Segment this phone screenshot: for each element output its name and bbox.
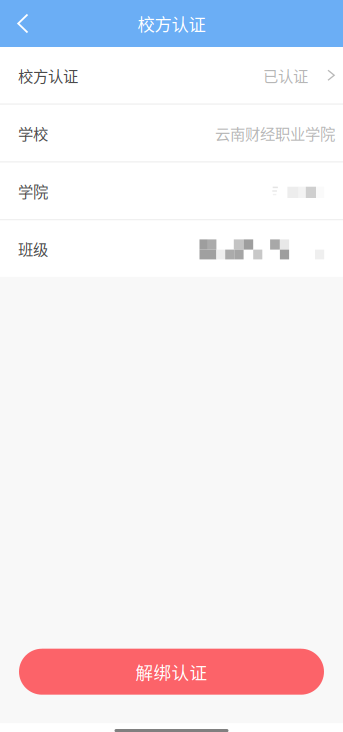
staticText: 校方认证: [18, 64, 78, 86]
button[interactable]: 校方认证: [0, 47, 343, 103]
button[interactable]: 解绑认证: [19, 649, 324, 695]
staticText: 云南财经职业学院: [215, 122, 335, 144]
staticText: 已认证: [263, 64, 308, 86]
staticText: 学院: [18, 180, 48, 202]
button[interactable]: Back: [0, 0, 46, 46]
staticText: 班级: [18, 237, 48, 260]
staticText: 学校: [18, 122, 48, 144]
staticText: 解绑认证: [135, 659, 207, 684]
staticText: 校方认证: [137, 11, 205, 36]
